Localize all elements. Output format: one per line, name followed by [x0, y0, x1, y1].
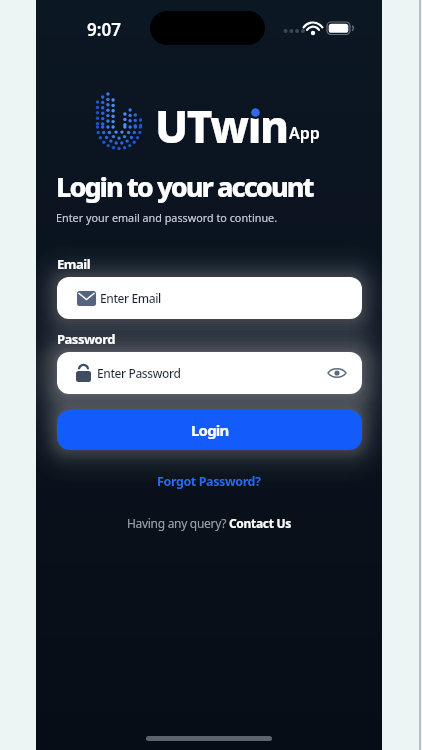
staticText: UTwin — [155, 96, 288, 156]
staticText: Forgot Password? — [157, 473, 261, 490]
staticText: Enter Email — [100, 290, 161, 306]
button[interactable]: Having any query? Contact Us — [36, 515, 382, 531]
button[interactable] — [328, 367, 346, 379]
staticText: Password — [57, 330, 115, 348]
staticText: Login — [191, 420, 229, 440]
staticText: 9:07 — [87, 18, 121, 41]
staticText: Email — [57, 255, 91, 273]
staticText: Enter Password — [97, 365, 181, 381]
staticText: App — [289, 122, 320, 144]
button[interactable]: Login — [57, 410, 362, 450]
staticText: Enter your email and password to continu… — [56, 210, 278, 225]
button[interactable]: Enter Email — [57, 277, 362, 319]
staticText: Login to your account — [56, 168, 313, 205]
staticText: Having any query? Contact Us — [127, 515, 291, 531]
button[interactable]: Forgot Password? — [36, 473, 382, 490]
button[interactable]: Enter Password — [57, 352, 362, 394]
